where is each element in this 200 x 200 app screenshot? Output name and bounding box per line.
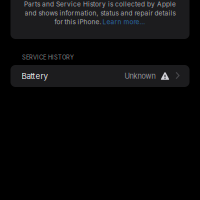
button[interactable]: Battery — [10, 65, 189, 87]
staticText: SERVICE HISTORY — [22, 54, 74, 61]
staticText: for this iPhone. — [54, 18, 101, 26]
staticText: Parts and Service History is collected b… — [24, 0, 176, 8]
staticText: and shows information, status and repair… — [24, 9, 175, 17]
staticText: Unknown — [124, 72, 155, 80]
staticText: Battery — [21, 71, 47, 81]
button[interactable]: Learn more… — [102, 18, 145, 26]
staticText: Learn more… — [102, 18, 145, 26]
